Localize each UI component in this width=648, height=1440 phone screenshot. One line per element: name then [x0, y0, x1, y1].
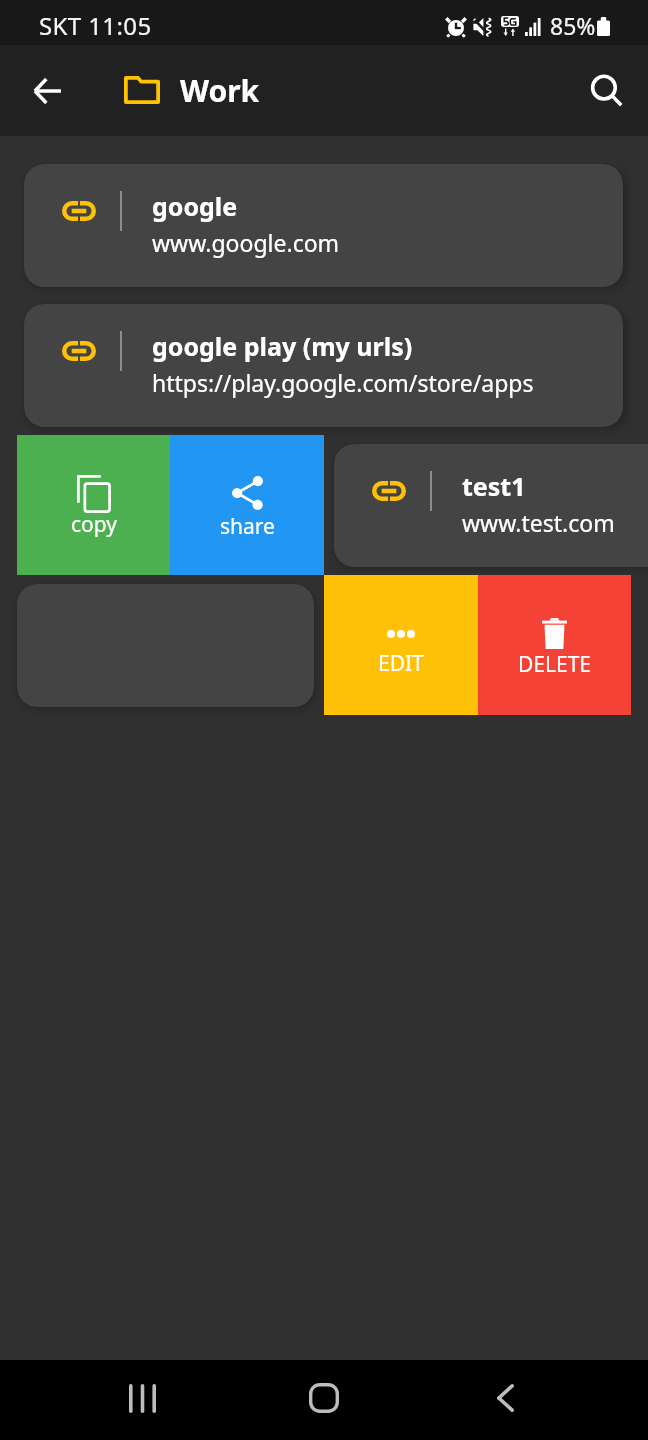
staticText: test1 — [462, 469, 526, 503]
button[interactable]: Navigate up — [13, 57, 81, 125]
button[interactable]: copy — [17, 435, 170, 575]
button[interactable]: share — [170, 435, 324, 575]
staticText: copy — [71, 510, 117, 539]
button[interactable]: Search — [573, 57, 641, 125]
button[interactable]: EDIT — [324, 575, 478, 715]
staticText: https://play.google.com/store/apps — [152, 367, 534, 398]
button[interactable]: google play (my urls) — [24, 304, 623, 427]
button[interactable]: test1 — [334, 444, 648, 567]
button[interactable]: Home — [290, 1364, 358, 1432]
staticText: www.test.com — [462, 507, 615, 538]
button[interactable]: Recent apps — [108, 1364, 176, 1432]
button[interactable]: Back — [471, 1364, 539, 1432]
staticText: google play (my urls) — [152, 329, 413, 363]
staticText: share — [220, 512, 275, 541]
button[interactable]: DELETE — [478, 575, 631, 715]
staticText: 85% — [550, 10, 596, 41]
staticText: Work — [180, 70, 260, 111]
button[interactable]: google — [24, 164, 623, 287]
staticText: EDIT — [378, 649, 424, 678]
staticText: www.google.com — [152, 227, 340, 258]
staticText: SKT 11:05 — [39, 9, 152, 42]
staticText: google — [152, 189, 238, 223]
staticText: DELETE — [518, 650, 592, 679]
